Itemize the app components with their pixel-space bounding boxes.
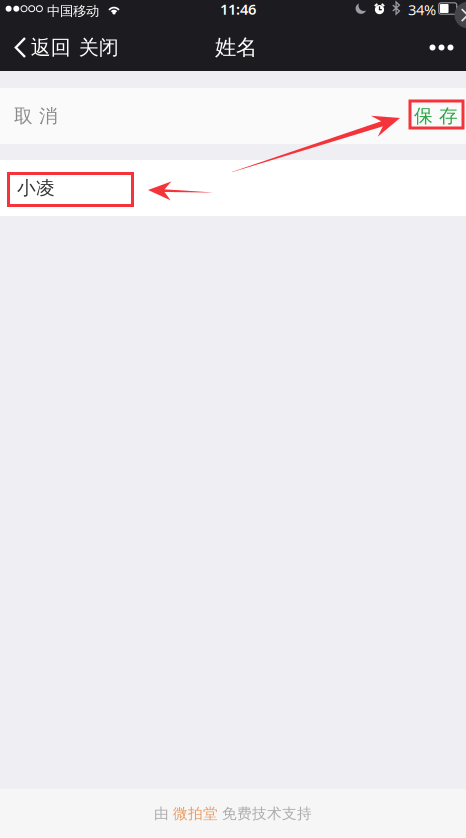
staticText: 微拍堂: [173, 804, 218, 822]
staticText: 中国移动: [47, 3, 99, 19]
staticText: 返回: [31, 35, 71, 60]
staticText: 免费技术支持: [222, 804, 312, 822]
staticText: 11:46: [220, 0, 256, 19]
button[interactable]: 取: [0, 88, 80, 144]
staticText: 取: [14, 104, 33, 127]
staticText: 由: [154, 804, 169, 822]
staticText: 保: [414, 104, 433, 127]
button[interactable]: 小凌: [0, 160, 466, 216]
staticText: 姓名: [215, 34, 257, 61]
staticText: 小凌: [17, 176, 55, 199]
staticText: 消: [39, 104, 58, 127]
button[interactable]: More options: [411, 24, 466, 71]
staticText: 关闭: [79, 35, 119, 60]
button[interactable]: 返回: [0, 24, 76, 71]
button[interactable]: Close: [454, 2, 466, 28]
button[interactable]: 微拍堂: [173, 804, 218, 822]
button[interactable]: 关闭: [76, 24, 122, 71]
staticText: 34%: [408, 0, 436, 19]
button[interactable]: 保: [392, 88, 466, 144]
staticText: 存: [439, 104, 458, 127]
